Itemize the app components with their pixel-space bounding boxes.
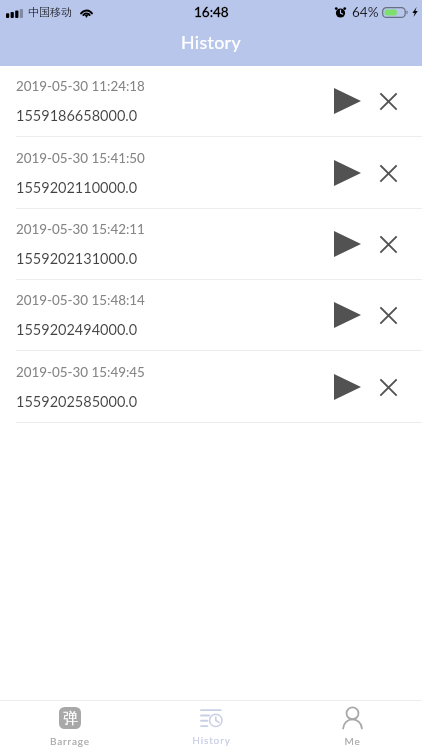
button[interactable]: 2019-05-30 15:42:11	[0, 209, 422, 280]
staticText: 2019-05-30 15:41:50	[16, 150, 145, 166]
button[interactable]: 2019-05-30 11:24:18	[0, 66, 422, 137]
staticText: 2019-05-30 15:49:45	[16, 364, 145, 380]
button[interactable]: 2019-05-30 15:41:50	[0, 137, 422, 209]
button[interactable]: 2019-05-30 15:48:14	[0, 280, 422, 351]
staticText: 1559202131000.0	[16, 250, 138, 267]
staticText: 2019-05-30 15:42:11	[16, 221, 145, 237]
staticText: 64%	[352, 4, 379, 20]
staticText: 弹	[63, 709, 78, 728]
button[interactable]: Delete	[366, 79, 410, 123]
staticText: Me	[344, 735, 361, 747]
staticText: History	[192, 734, 231, 746]
button[interactable]: Play	[329, 365, 366, 409]
button[interactable]: Play	[329, 222, 366, 266]
staticText: 2019-05-30 11:24:18	[16, 78, 145, 94]
button[interactable]: Delete	[366, 222, 410, 266]
button[interactable]: Play	[329, 151, 366, 195]
staticText: 1559186658000.0	[16, 107, 138, 124]
button[interactable]: Delete	[366, 365, 410, 409]
button[interactable]: Delete	[366, 151, 410, 195]
staticText: 16:48	[194, 4, 229, 20]
button[interactable]: 2019-05-30 15:49:45	[0, 351, 422, 423]
button[interactable]: Play	[329, 293, 366, 337]
staticText: History	[181, 31, 241, 52]
staticText: 2019-05-30 15:48:14	[16, 292, 145, 308]
staticText: 1559202494000.0	[16, 321, 138, 338]
button[interactable]: Me	[282, 701, 422, 750]
button[interactable]: Delete	[366, 293, 410, 337]
staticText: Barrage	[50, 735, 90, 747]
button[interactable]: History	[141, 701, 281, 750]
staticText: 中国移动	[28, 5, 72, 19]
button[interactable]: Play	[329, 79, 366, 123]
button[interactable]: 弹	[0, 701, 140, 750]
staticText: 1559202110000.0	[16, 179, 138, 196]
staticText: 1559202585000.0	[16, 393, 138, 410]
